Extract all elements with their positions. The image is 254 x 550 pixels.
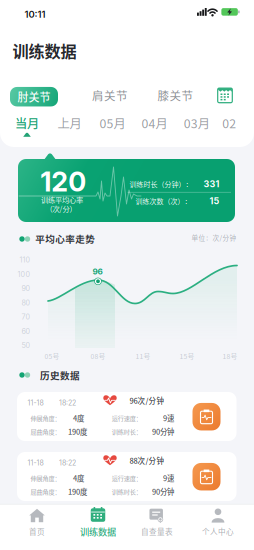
staticText: 08号 <box>90 351 105 361</box>
staticText: 04月 <box>142 114 168 132</box>
button[interactable]: 训练数据 <box>68 506 128 538</box>
staticText: 90分钟 <box>152 426 174 437</box>
staticText: 4度 <box>73 473 84 483</box>
button[interactable]: 自查量表 <box>127 506 187 538</box>
staticText: 11-18 <box>27 459 43 467</box>
staticText: 运行速度： <box>112 473 142 482</box>
staticText: 训练数据 <box>12 39 76 62</box>
staticText: 190度 <box>68 426 87 437</box>
staticText: 18:22 <box>59 399 76 407</box>
button[interactable]: 个人中心 <box>188 506 248 538</box>
staticText: 88次/分钟 <box>129 455 164 466</box>
staticText: 运行速度： <box>112 413 142 422</box>
button[interactable]: 02 <box>222 114 236 132</box>
button[interactable]: 当月 <box>15 114 39 132</box>
staticText: 屈曲角度： <box>30 487 60 496</box>
staticText: 03月 <box>184 114 210 132</box>
staticText: 90分钟 <box>152 486 174 497</box>
staticText: 伸展角度： <box>30 413 60 422</box>
staticText: 80 <box>21 298 30 307</box>
staticText: 上月 <box>57 114 81 132</box>
staticText: 50 <box>21 341 30 350</box>
button[interactable]: 03月 <box>184 114 210 132</box>
staticText: 屈曲角度： <box>30 427 60 436</box>
staticText: 训练数据 <box>80 525 116 538</box>
button[interactable]: 上月 <box>57 114 81 132</box>
staticText: 05月 <box>99 114 125 132</box>
staticText: 110 <box>19 256 30 264</box>
staticText: 331 <box>203 179 219 189</box>
staticText: 训练时长： <box>112 427 142 436</box>
staticText: 96 <box>92 266 102 276</box>
staticText: 18号 <box>222 351 237 361</box>
staticText: 15 <box>209 196 219 206</box>
staticText: 肘关节 <box>17 89 50 105</box>
staticText: 18:22 <box>59 459 76 467</box>
staticText: 历史数据 <box>40 368 80 382</box>
staticText: 训练平均心率 <box>41 194 83 205</box>
staticText: 96次/分钟 <box>129 395 164 406</box>
staticText: 训练时长（分钟）： <box>129 179 192 189</box>
button[interactable]: 膝关节 <box>157 87 193 104</box>
staticText: 190度 <box>68 486 87 497</box>
staticText: 9速 <box>163 413 174 423</box>
staticText: 训练时长： <box>112 487 142 496</box>
staticText: 膝关节 <box>157 87 193 104</box>
staticText: 02 <box>222 114 236 132</box>
button[interactable]: 肘关节 <box>10 87 58 106</box>
staticText: 15号 <box>179 351 194 361</box>
button[interactable]: 首页 <box>7 506 67 538</box>
staticText: 伸展角度： <box>30 473 60 482</box>
staticText: 平均心率走势 <box>35 231 95 245</box>
staticText: 个人中心 <box>202 526 234 537</box>
staticText: 肩关节 <box>92 87 128 104</box>
staticText: 11-18 <box>27 399 43 407</box>
staticText: 05号 <box>44 351 59 361</box>
staticText: 自查量表 <box>141 526 173 537</box>
staticText: 60 <box>21 327 30 336</box>
button[interactable]: 查看报告 <box>192 403 220 430</box>
staticText: 首页 <box>29 526 45 537</box>
button[interactable]: 04月 <box>142 114 168 132</box>
staticText: 120 <box>40 165 86 198</box>
staticText: 单位：次/分钟 <box>191 233 236 242</box>
button[interactable]: 05月 <box>99 114 125 132</box>
button[interactable]: 选择日期 <box>216 86 233 104</box>
staticText: 当月 <box>15 114 39 132</box>
staticText: 70 <box>21 313 30 321</box>
staticText: （次/分） <box>45 203 76 214</box>
staticText: 100 <box>17 270 30 279</box>
staticText: 90 <box>21 284 30 293</box>
button[interactable]: 肩关节 <box>92 87 128 104</box>
staticText: 9速 <box>163 473 174 483</box>
staticText: 4度 <box>73 413 84 423</box>
button[interactable]: 查看报告 <box>192 463 220 490</box>
staticText: 11号 <box>135 351 150 361</box>
staticText: 训练次数（次）： <box>135 196 191 206</box>
staticText: 10:11 <box>24 8 45 20</box>
